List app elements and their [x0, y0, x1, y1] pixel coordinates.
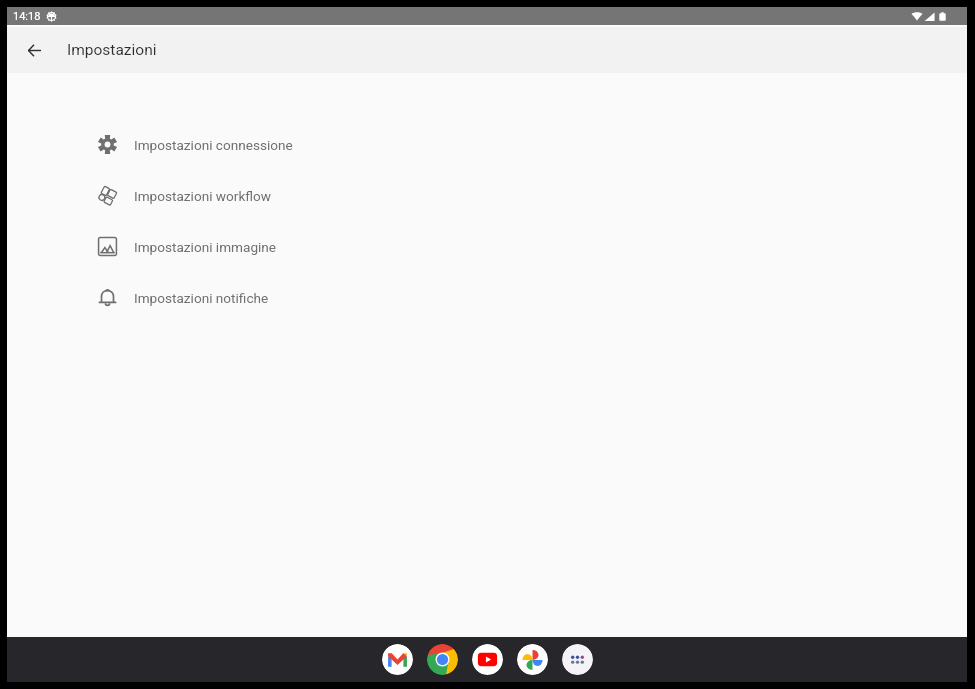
staticText: Impostazioni connessione — [134, 137, 293, 153]
button[interactable]: Back — [21, 37, 47, 63]
staticText: Impostazioni — [67, 41, 157, 59]
button[interactable]: Photos — [517, 644, 548, 675]
button[interactable]: Gmail — [382, 644, 413, 675]
staticText: 14:18 — [13, 10, 41, 23]
button[interactable]: Impostazioni connessione — [7, 119, 967, 170]
button[interactable]: YouTube — [472, 644, 503, 675]
button[interactable]: Impostazioni workflow — [7, 170, 967, 221]
staticText: Impostazioni notifiche — [134, 290, 269, 306]
button[interactable]: Chrome — [427, 644, 458, 675]
button[interactable]: All apps — [562, 644, 593, 675]
staticText: Impostazioni workflow — [134, 188, 271, 204]
button[interactable]: Impostazioni immagine — [7, 221, 967, 272]
staticText: Impostazioni immagine — [134, 239, 277, 255]
button[interactable]: Impostazioni notifiche — [7, 272, 967, 323]
